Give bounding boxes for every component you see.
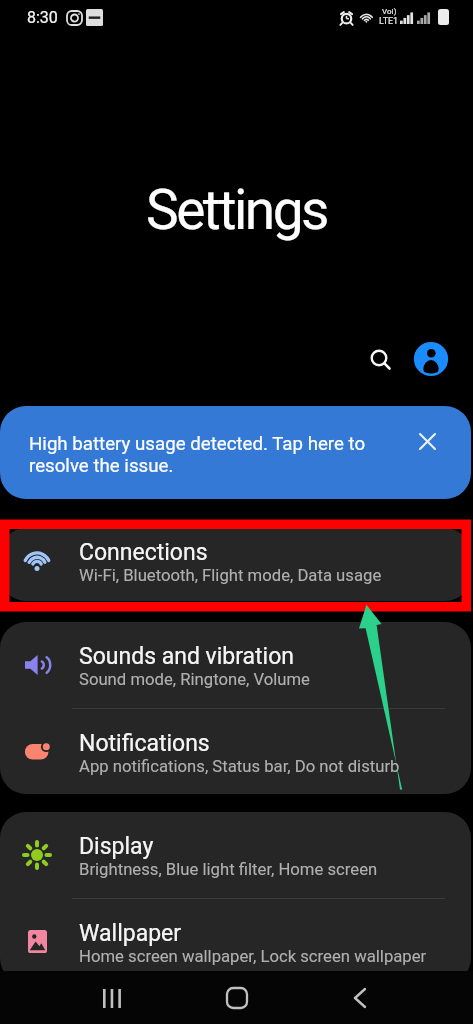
staticText: 8:30 <box>27 8 58 27</box>
button[interactable]: Notifications <box>0 709 471 794</box>
button[interactable]: Search <box>359 338 402 381</box>
staticText: Sounds and vibration <box>79 643 295 670</box>
staticText: App notifications, Status bar, Do not di… <box>79 757 400 777</box>
staticText: Home screen wallpaper, Lock screen wallp… <box>79 947 427 967</box>
staticText: Notifications <box>79 730 210 757</box>
staticText: Connections <box>79 539 208 566</box>
staticText: VoI) <box>382 7 397 16</box>
button[interactable]: Home <box>217 978 257 1018</box>
button[interactable]: Back <box>340 978 380 1018</box>
button[interactable]: Connections <box>0 528 471 601</box>
staticText: Settings <box>146 178 328 242</box>
staticText: Brightness, Blue light filter, Home scre… <box>79 860 378 880</box>
button[interactable]: Sounds and vibration <box>0 622 471 708</box>
staticText: LTE1 <box>379 16 399 27</box>
button[interactable]: Display <box>0 812 471 898</box>
staticText: Display <box>79 833 154 860</box>
staticText: Sound mode, Ringtone, Volume <box>79 670 310 690</box>
button[interactable]: High battery usage detected. Tap here to… <box>0 406 471 499</box>
staticText: High battery usage detected. Tap here to… <box>29 433 366 477</box>
staticText: Wi-Fi, Bluetooth, Flight mode, Data usag… <box>79 566 382 586</box>
staticText: Wallpaper <box>79 920 182 947</box>
button[interactable]: Account <box>409 337 452 380</box>
button[interactable]: Wallpaper <box>0 899 471 984</box>
button[interactable]: Recent apps <box>92 978 132 1018</box>
button[interactable]: Close <box>414 428 440 454</box>
